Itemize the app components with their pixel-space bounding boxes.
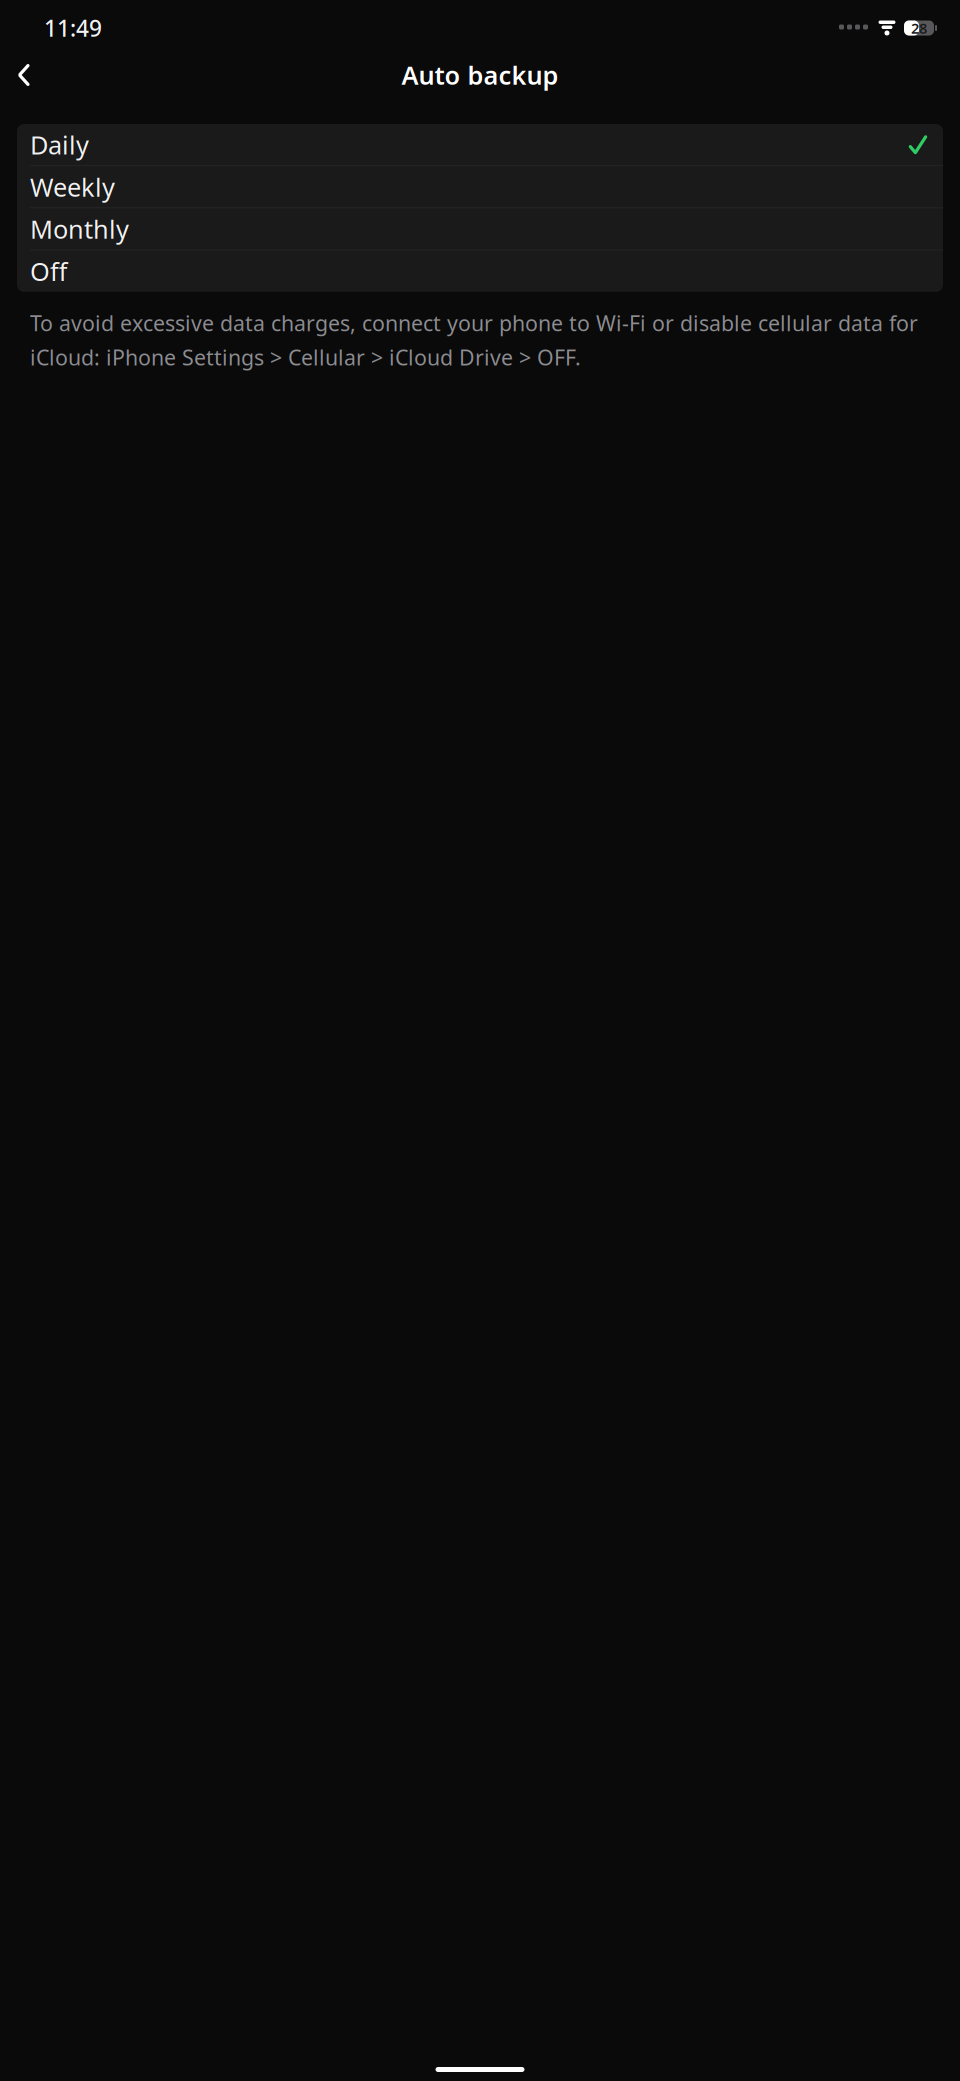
button[interactable]: Weekly — [17, 166, 943, 208]
staticText: Monthly — [30, 212, 129, 246]
button[interactable]: Back — [2, 53, 46, 97]
staticText: Auto backup — [401, 58, 558, 92]
staticText: Weekly — [30, 170, 115, 204]
staticText: 11:49 — [44, 13, 102, 43]
staticText: 28 — [911, 18, 927, 38]
button[interactable]: Off — [17, 250, 943, 292]
staticText: Daily — [30, 128, 89, 161]
staticText: Off — [30, 254, 67, 288]
button[interactable]: Monthly — [17, 208, 943, 250]
staticText: To avoid excessive data charges, connect… — [30, 309, 918, 371]
button[interactable]: Daily — [17, 124, 943, 166]
